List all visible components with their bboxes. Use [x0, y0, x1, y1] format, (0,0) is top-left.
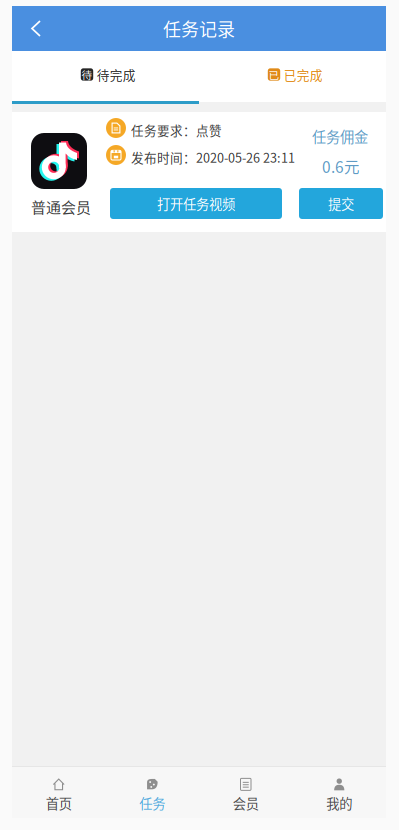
staticText: 已: [268, 67, 279, 82]
staticText: 发布时间：2020-05-26 23:11: [131, 148, 295, 166]
staticText: 提交: [328, 194, 354, 213]
staticText: 任务要求：点赞: [131, 121, 222, 139]
button[interactable]: 待: [12, 51, 199, 98]
button[interactable]: 会员: [199, 767, 292, 818]
staticText: 打开任务视频: [157, 194, 235, 213]
staticText: 待: [81, 67, 92, 82]
button[interactable]: 打开任务视频: [110, 188, 282, 219]
staticText: 待完成: [97, 65, 136, 84]
staticText: 普通会员: [31, 196, 91, 218]
staticText: 会员: [233, 793, 259, 813]
button[interactable]: 任务: [105, 767, 199, 818]
staticText: 任务记录: [163, 15, 235, 42]
button[interactable]: 我的: [292, 767, 386, 818]
staticText: 0.6元: [322, 155, 359, 177]
staticText: 任务佣金: [312, 126, 368, 147]
staticText: 首页: [46, 793, 72, 813]
button[interactable]: 提交: [299, 188, 383, 219]
staticText: 已完成: [284, 65, 323, 84]
button[interactable]: 首页: [12, 767, 105, 818]
staticText: 我的: [326, 793, 352, 813]
button[interactable]: Back: [12, 6, 60, 51]
button[interactable]: 已: [199, 51, 386, 98]
staticText: 任务: [139, 793, 165, 813]
